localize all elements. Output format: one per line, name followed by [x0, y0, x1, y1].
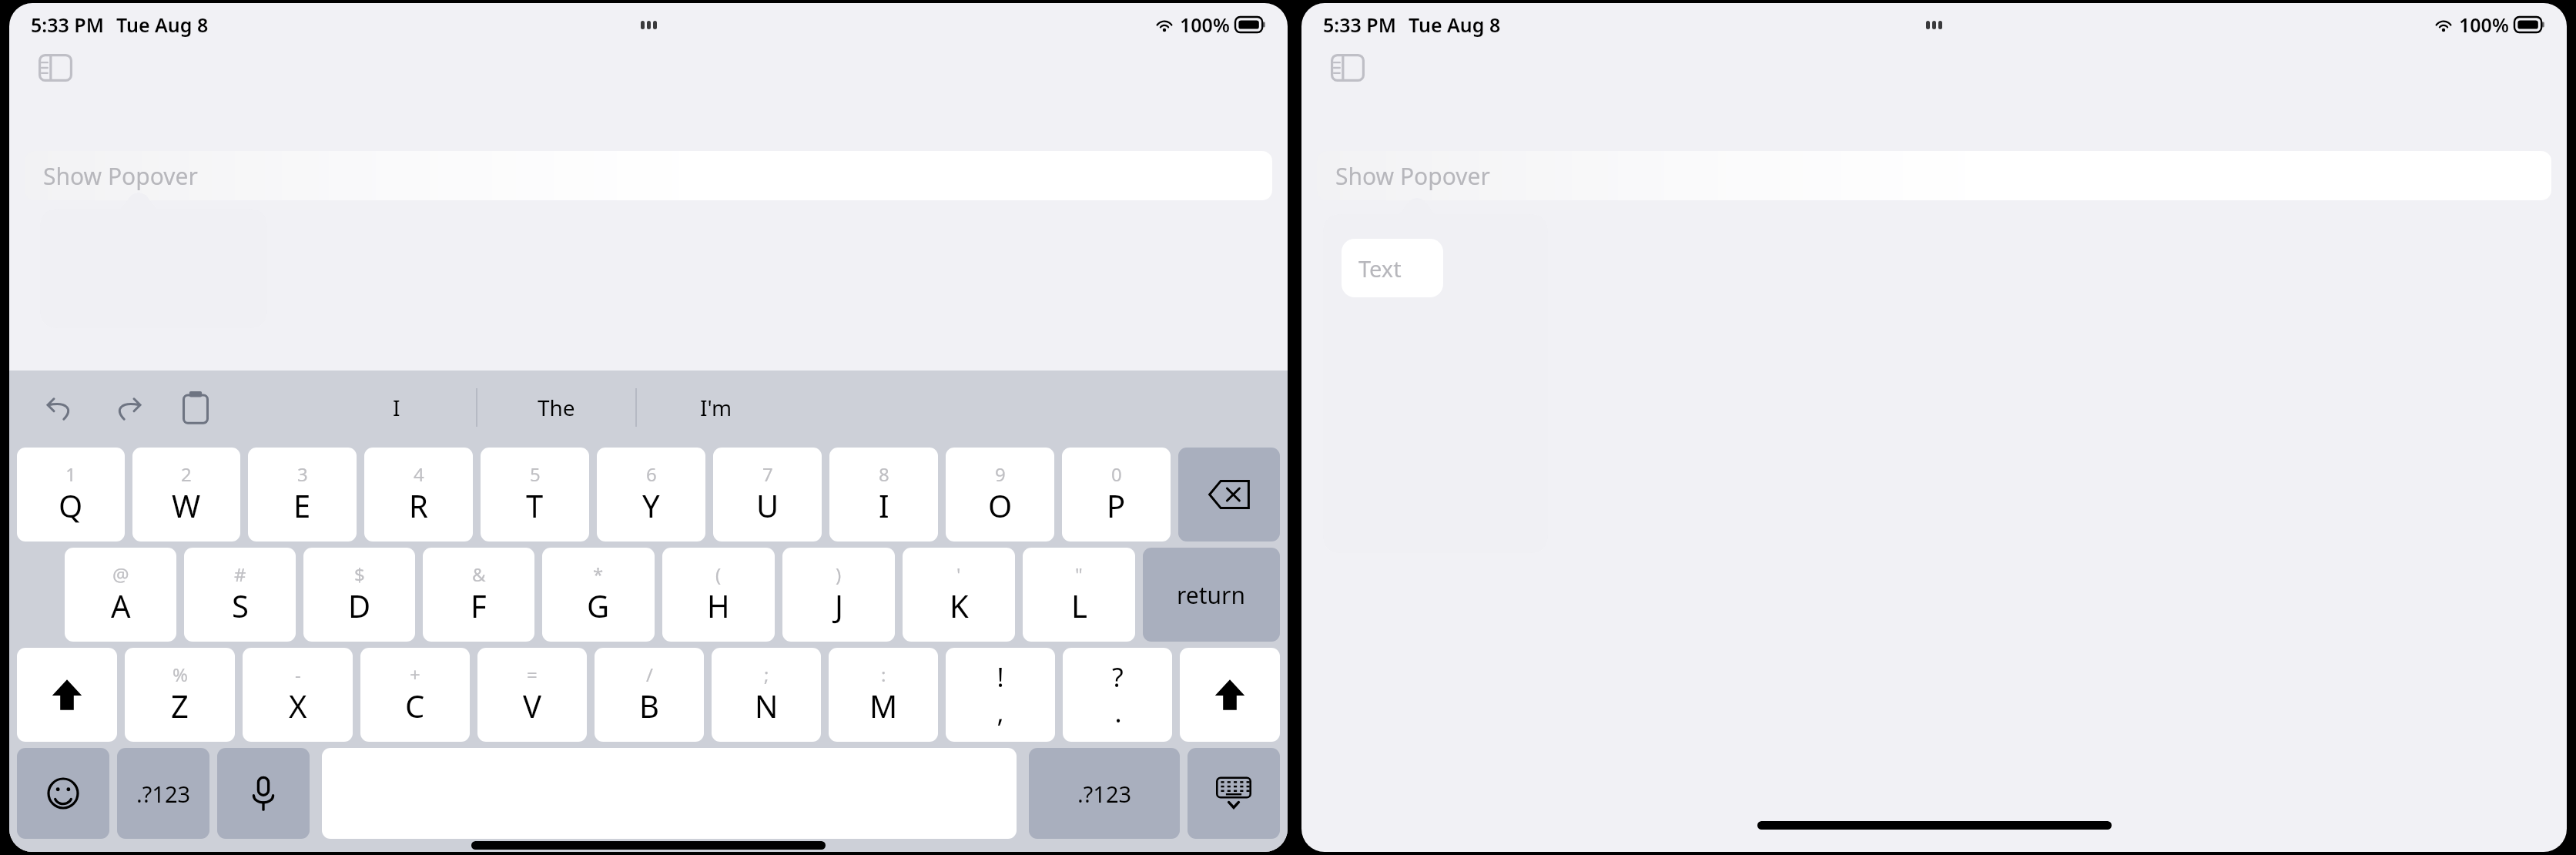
button[interactable]: ": [1023, 548, 1135, 642]
button[interactable]: I'm: [637, 370, 795, 444]
button[interactable]: ': [903, 548, 1015, 642]
staticText: 5:33 PM: [1323, 12, 1396, 38]
staticText: @: [112, 562, 129, 587]
staticText: A: [111, 585, 131, 626]
button[interactable]: (: [662, 548, 775, 642]
button[interactable]: 1: [17, 448, 125, 541]
staticText: Tue Aug 8: [116, 12, 209, 38]
staticText: G: [587, 585, 610, 626]
button[interactable]: -: [243, 648, 353, 742]
button[interactable]: !: [946, 648, 1055, 742]
button[interactable]: The: [477, 370, 635, 444]
staticText: (: [715, 562, 722, 587]
staticText: I'm: [700, 393, 732, 422]
button[interactable]: 2: [132, 448, 240, 541]
button[interactable]: +: [360, 648, 470, 742]
button[interactable]: Hide keyboard: [1188, 748, 1280, 839]
staticText: Y: [642, 484, 660, 526]
button[interactable]: 9: [946, 448, 1054, 541]
staticText: R: [409, 484, 428, 526]
button[interactable]: Paste: [176, 387, 216, 427]
staticText: 8: [879, 461, 889, 487]
button[interactable]: 3: [248, 448, 357, 541]
staticText: $: [354, 562, 365, 587]
button[interactable]: Numbers: [117, 748, 209, 839]
staticText: V: [523, 685, 541, 726]
staticText: -: [295, 662, 301, 687]
staticText: =: [527, 662, 538, 687]
button[interactable]: :: [829, 648, 938, 742]
staticText: E: [293, 484, 311, 526]
staticText: J: [835, 585, 843, 626]
staticText: ': [956, 562, 961, 587]
staticText: ;: [764, 662, 769, 687]
staticText: .?123: [136, 779, 191, 809]
button[interactable]: $: [303, 548, 415, 642]
staticText: C: [405, 685, 425, 726]
staticText: ?: [1112, 659, 1124, 695]
button[interactable]: Emoji: [17, 748, 109, 839]
staticText: &: [472, 562, 486, 587]
staticText: %: [173, 662, 188, 687]
button[interactable]: 0: [1062, 448, 1171, 541]
button[interactable]: 6: [597, 448, 705, 541]
button[interactable]: &: [423, 548, 534, 642]
staticText: 3: [297, 461, 308, 487]
staticText: 100%: [1180, 12, 1230, 38]
staticText: /: [646, 662, 653, 687]
button[interactable]: Backspace: [1178, 448, 1280, 541]
button[interactable]: Return: [1143, 548, 1280, 642]
staticText: ): [836, 562, 842, 587]
button[interactable]: Toggle sidebar: [1323, 46, 1372, 89]
button[interactable]: 5: [481, 448, 589, 541]
staticText: !: [997, 659, 1004, 695]
button[interactable]: %: [125, 648, 235, 742]
staticText: I: [879, 484, 889, 526]
button[interactable]: /: [595, 648, 704, 742]
button[interactable]: ?: [1063, 648, 1172, 742]
button[interactable]: 7: [713, 448, 822, 541]
button[interactable]: 8: [829, 448, 938, 541]
button[interactable]: Dictation: [217, 748, 310, 839]
staticText: D: [348, 585, 371, 626]
button[interactable]: Numbers: [1029, 748, 1180, 839]
staticText: 5: [530, 461, 541, 487]
staticText: S: [232, 585, 249, 626]
button[interactable]: Toggle sidebar: [31, 46, 80, 89]
button[interactable]: Undo: [40, 387, 80, 427]
staticText: U: [756, 484, 779, 526]
button[interactable]: ;: [712, 648, 821, 742]
button[interactable]: I: [317, 370, 476, 444]
staticText: X: [289, 685, 307, 726]
staticText: Text: [1358, 253, 1402, 283]
staticText: ,: [997, 695, 1004, 730]
staticText: I: [393, 393, 400, 422]
staticText: B: [639, 685, 659, 726]
button[interactable]: =: [477, 648, 587, 742]
staticText: ": [1075, 562, 1083, 587]
staticText: L: [1071, 585, 1087, 626]
button[interactable]: Show Popover: [25, 151, 1272, 200]
button[interactable]: @: [65, 548, 176, 642]
staticText: 2: [181, 461, 192, 487]
button[interactable]: Shift: [17, 648, 117, 742]
staticText: H: [707, 585, 730, 626]
button[interactable]: ): [782, 548, 895, 642]
staticText: 6: [646, 461, 657, 487]
button[interactable]: Text: [1342, 239, 1443, 297]
staticText: 9: [995, 461, 1006, 487]
staticText: .?123: [1077, 779, 1132, 809]
button[interactable]: 4: [364, 448, 473, 541]
staticText: Z: [171, 685, 189, 726]
button[interactable]: #: [184, 548, 296, 642]
button[interactable]: Redo: [108, 387, 148, 427]
staticText: 5:33 PM: [31, 12, 104, 38]
button[interactable]: Show Popover: [1317, 151, 2551, 200]
staticText: 1: [65, 461, 76, 487]
staticText: .: [1114, 695, 1122, 730]
staticText: return: [1177, 579, 1246, 611]
staticText: Tue Aug 8: [1409, 12, 1501, 38]
button[interactable]: *: [542, 548, 655, 642]
button[interactable]: Shift: [1180, 648, 1280, 742]
